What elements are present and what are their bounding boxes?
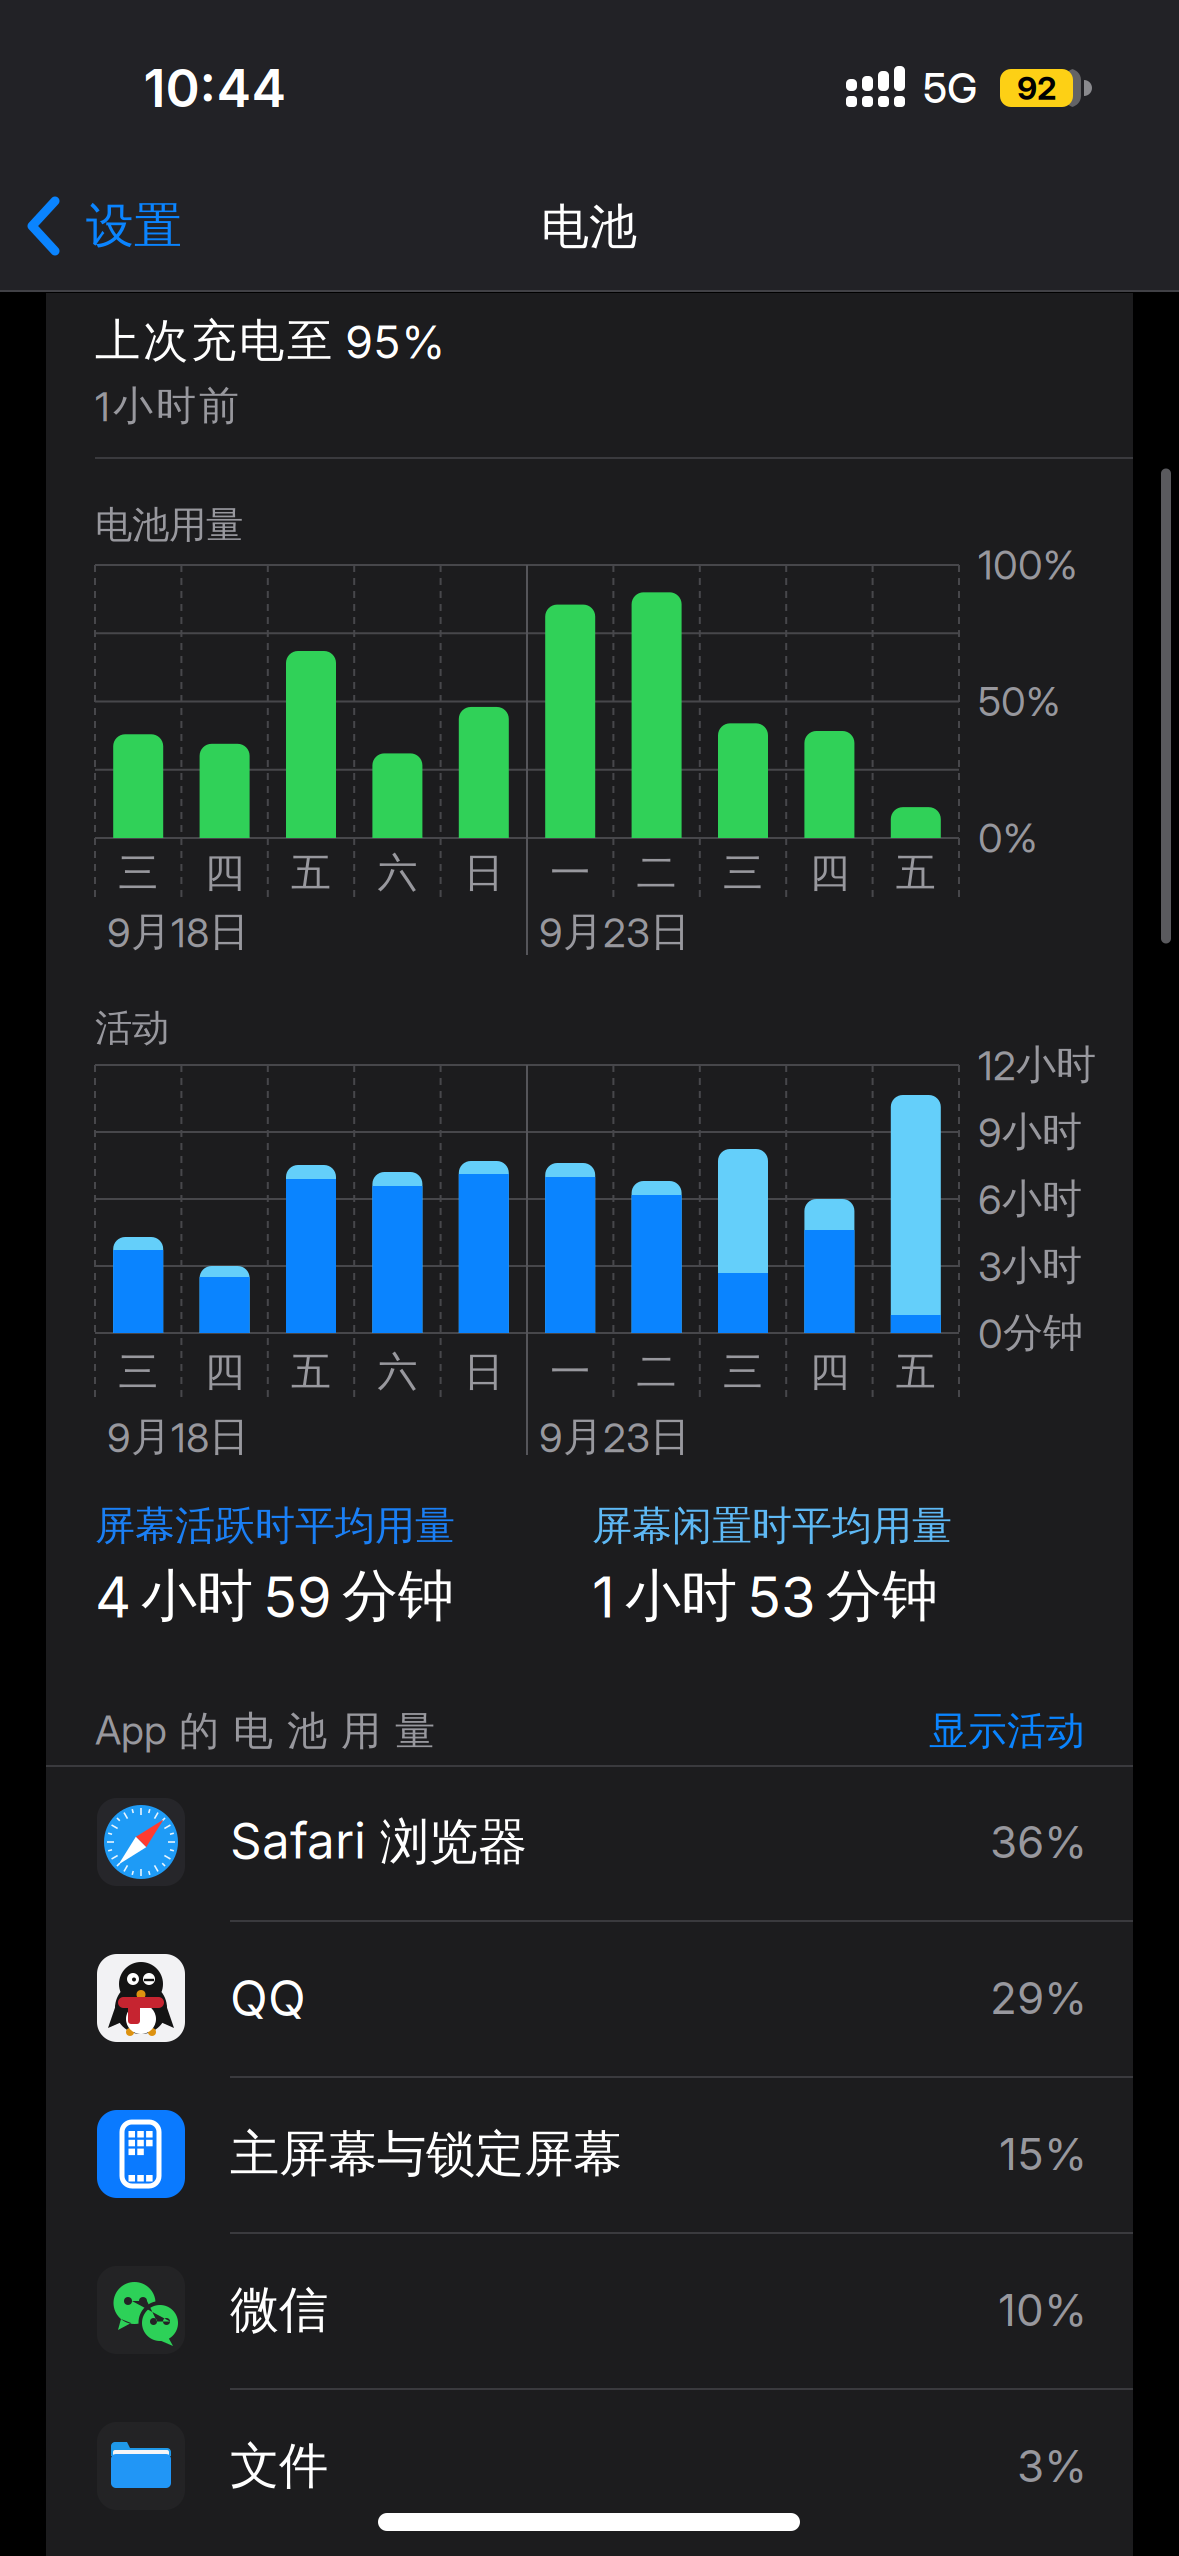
staticText: 微信	[230, 2280, 328, 2340]
staticText: 五	[291, 848, 331, 897]
staticText: 三	[723, 1347, 763, 1396]
button[interactable]: 微信	[46, 2232, 1133, 2388]
staticText: 9小时	[978, 1107, 1082, 1156]
staticText: 一	[550, 848, 590, 897]
staticText: 100%	[978, 541, 1077, 589]
staticText: 1 小时 53 分钟	[592, 1562, 938, 1630]
staticText: 三	[723, 848, 763, 897]
staticText: 0分钟	[978, 1308, 1083, 1357]
staticText: 四	[809, 1347, 849, 1396]
staticText: QQ	[230, 1969, 306, 2027]
staticText: 3小时	[978, 1241, 1082, 1290]
staticText: 屏幕活跃时平均用量	[95, 1501, 455, 1550]
staticText: 4 小时 59 分钟	[95, 1562, 454, 1630]
staticText: 日	[464, 848, 504, 897]
staticText: 10%	[998, 2284, 1087, 2336]
staticText: 屏幕闲置时平均用量	[592, 1501, 952, 1550]
staticText: 三	[118, 1347, 158, 1396]
staticText: 日	[464, 1347, 504, 1396]
staticText: 9月23日	[539, 1412, 690, 1461]
staticText: 六	[377, 848, 417, 897]
staticText: 一	[550, 1347, 590, 1396]
staticText: Safari 浏览器	[230, 1811, 527, 1872]
staticText: 29%	[990, 1972, 1087, 2024]
staticText: 15%	[999, 2128, 1087, 2180]
staticText: 二	[637, 848, 677, 897]
staticText: 10:44	[143, 57, 286, 119]
staticText: 四	[205, 848, 245, 897]
staticText: 92	[1017, 69, 1057, 107]
staticText: 9月18日	[107, 907, 249, 956]
staticText: 9月18日	[107, 1412, 249, 1461]
staticText: 36%	[990, 1816, 1087, 1868]
staticText: 主屏幕与锁定屏幕	[230, 2124, 622, 2184]
staticText: 三	[118, 848, 158, 897]
button[interactable]: 显示活动	[685, 1707, 1085, 1755]
staticText: 显示活动	[929, 1707, 1085, 1755]
staticText: 0%	[978, 814, 1037, 862]
button[interactable]: Safari 浏览器	[46, 1764, 1133, 1920]
staticText: 五	[896, 1347, 936, 1396]
button[interactable]: QQ	[46, 1920, 1133, 2076]
staticText: 上 次 充 电 至 95%	[95, 313, 446, 369]
staticText: 9月23日	[539, 907, 690, 956]
staticText: 3%	[1017, 2440, 1087, 2492]
staticText: 6小时	[978, 1174, 1082, 1223]
staticText: 5G	[923, 64, 977, 112]
staticText: 二	[637, 1347, 677, 1396]
button[interactable]: 文件	[46, 2388, 1133, 2544]
staticText: 六	[377, 1347, 417, 1396]
staticText: 活动	[95, 1005, 169, 1051]
staticText: 电池用量	[95, 502, 243, 548]
button[interactable]: 返回设置	[27, 181, 327, 271]
staticText: 1 小 时 前	[95, 381, 239, 430]
staticText: 四	[205, 1347, 245, 1396]
staticText: 电池	[541, 197, 637, 256]
staticText: 四	[809, 848, 849, 897]
staticText: 文件	[230, 2436, 328, 2496]
staticText: 五	[896, 848, 936, 897]
staticText: 设置	[86, 196, 182, 255]
staticText: 50%	[978, 678, 1060, 725]
staticText: App 的 电 池 用 量	[95, 1706, 435, 1756]
button[interactable]: 主屏幕与锁定屏幕	[46, 2076, 1133, 2232]
staticText: 五	[291, 1347, 331, 1396]
staticText: 12小时	[978, 1040, 1096, 1089]
